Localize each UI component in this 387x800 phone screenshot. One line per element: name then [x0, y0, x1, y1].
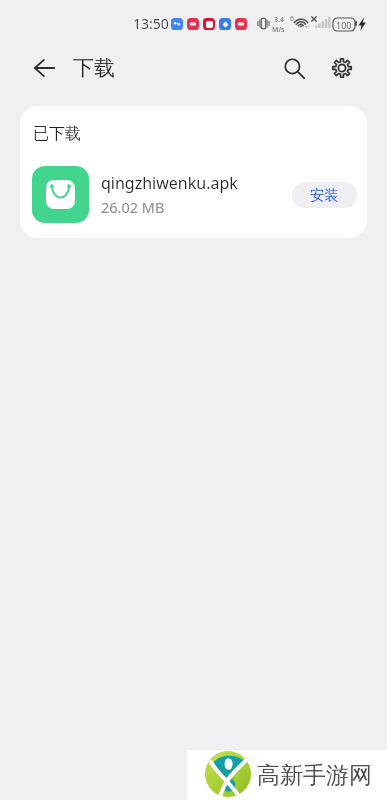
button[interactable]: qingzhiwenku.apk	[32, 166, 357, 223]
staticText: 高新手游网	[257, 761, 372, 790]
button[interactable]: Settings	[320, 46, 364, 90]
staticText: qingzhiwenku.apk	[101, 172, 238, 194]
staticText: 下载	[73, 55, 115, 81]
button[interactable]: Back	[22, 46, 66, 90]
button[interactable]: Search	[272, 46, 316, 90]
button[interactable]: 安装	[292, 182, 357, 208]
staticText: 安装	[310, 186, 339, 204]
staticText: 100	[336, 19, 352, 31]
staticText: 26.02 MB	[101, 197, 165, 217]
staticText: 6	[290, 14, 295, 24]
staticText: M/s	[272, 25, 285, 35]
staticText: 3.4	[274, 15, 284, 25]
staticText: 已下载	[33, 124, 81, 144]
staticText: 13:50	[133, 14, 169, 33]
